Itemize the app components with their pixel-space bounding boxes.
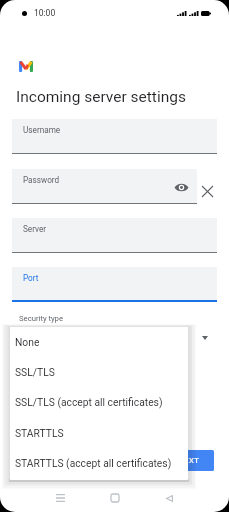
button[interactable]: Recents (48, 486, 72, 510)
staticText: STARTTLS (15, 427, 64, 439)
button[interactable]: Server (12, 218, 217, 253)
staticText: Security type (19, 314, 63, 323)
staticText: None (15, 336, 40, 348)
staticText: Password (23, 175, 60, 185)
button[interactable]: STARTTLS (accept all certificates) (10, 448, 188, 478)
button[interactable]: Security type dropdown (196, 329, 213, 346)
staticText: SSL/TLS (15, 366, 55, 378)
button[interactable]: STARTTLS (10, 418, 188, 448)
button[interactable]: Username (12, 119, 217, 154)
button[interactable]: Back (157, 486, 181, 510)
button[interactable]: SSL/TLS (accept all certificates) (10, 387, 188, 417)
button[interactable]: None (10, 327, 188, 357)
button[interactable]: Password (12, 169, 197, 204)
staticText: SSL/TLS (accept all certificates) (15, 396, 163, 408)
staticText: Username (23, 125, 61, 135)
button[interactable]: Home (103, 486, 127, 510)
button[interactable]: NEXT (164, 450, 214, 471)
staticText: NEXT (178, 456, 200, 465)
staticText: 10:00 (34, 8, 56, 18)
staticText: Incoming server settings (16, 88, 186, 106)
staticText: Server (23, 224, 47, 234)
button[interactable]: Show password (172, 178, 190, 196)
button[interactable]: Clear (198, 182, 216, 200)
staticText: Port (23, 273, 39, 283)
button[interactable]: Port (12, 267, 217, 302)
button[interactable]: SSL/TLS (10, 357, 188, 387)
staticText: STARTTLS (accept all certificates) (15, 457, 172, 469)
